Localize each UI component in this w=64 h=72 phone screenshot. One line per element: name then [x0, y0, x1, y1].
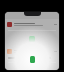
button[interactable]: Message sticker	[29, 36, 35, 42]
button[interactable]: New message	[30, 56, 35, 63]
button[interactable]	[8, 57, 51, 59]
button[interactable]	[5, 48, 59, 55]
button[interactable]	[5, 21, 59, 28]
